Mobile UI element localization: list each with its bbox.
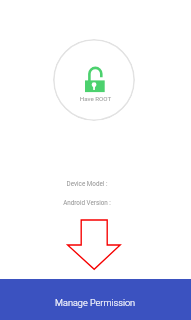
staticText: Have ROOT xyxy=(54,95,137,105)
staticText: Android Version : xyxy=(0,199,174,211)
button[interactable]: Manage Permission xyxy=(0,279,191,320)
button[interactable]: Root status xyxy=(53,39,135,121)
staticText: Device Model : xyxy=(0,180,174,192)
staticText: Manage Permission xyxy=(55,297,136,308)
other: Scroll down xyxy=(66,219,122,271)
